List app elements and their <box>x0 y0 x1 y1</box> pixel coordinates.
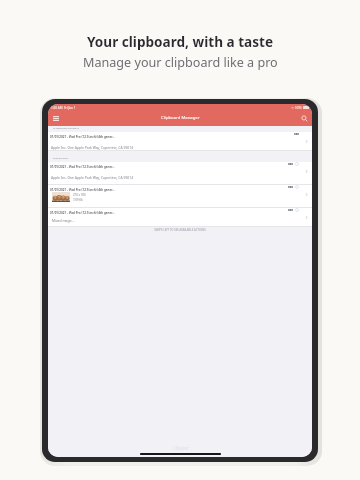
button[interactable]: 01/01/2021 - iPad Pro (12.9-inch) (4th g… <box>48 185 312 208</box>
staticText: Your clipboard, with a taste <box>87 32 274 51</box>
staticText: 01/01/2021 - iPad Pro (12.9-inch) (4th g… <box>50 165 115 169</box>
staticText: Clipper <box>173 445 189 451</box>
staticText: Apple Inc. One Apple Park Way, Cupertino… <box>51 175 134 180</box>
staticText: 01/01/2021 - iPad Pro (12.9-inch) (4th g… <box>50 135 115 139</box>
staticText: 100% <box>295 106 302 110</box>
staticText: 01/01/2021 - iPad Pro (12.9-inch) (4th g… <box>50 188 115 192</box>
staticText: Apple Inc. One Apple Park Way, Cupertino… <box>51 145 134 150</box>
staticText: 270 x 180 <box>73 193 86 197</box>
staticText: 7.89 Kb <box>73 198 83 202</box>
staticText: SWIPE LEFT TO SEE AVAILABLE ACTIONS <box>154 228 206 232</box>
staticText: CLIPBOARD CONTENT <box>53 126 79 129</box>
button[interactable]: Search <box>298 112 310 124</box>
button[interactable]: 01/01/2021 - iPad Pro (12.9-inch) (4th g… <box>48 162 312 185</box>
staticText: Manage your clipboard like a pro <box>83 54 278 71</box>
button[interactable]: 01/01/2021 - iPad Pro (12.9-inch) (4th g… <box>48 132 312 151</box>
staticText: 1:20 AM Fri Jan 1 <box>51 106 76 110</box>
staticText: 01/01/2021 - iPad Pro (12.9-inch) (4th g… <box>50 211 115 215</box>
staticText: Mixed magic... <box>52 218 75 223</box>
staticText: SAVED CLIPS <box>53 156 68 159</box>
button[interactable]: Open navigation menu <box>50 112 62 124</box>
staticText: Clipboard Manager <box>161 115 200 121</box>
button[interactable]: 01/01/2021 - iPad Pro (12.9-inch) (4th g… <box>48 208 312 227</box>
